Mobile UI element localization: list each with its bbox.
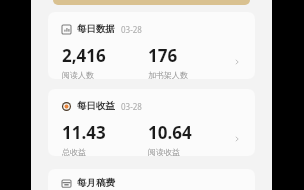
staticText: 10.64 [148,121,192,144]
button[interactable]: 每日收益 [48,89,255,156]
button[interactable]: 每月稿费 [48,169,255,190]
staticText: 03-28 [121,101,142,112]
staticText: 阅读收益 [148,147,180,156]
staticText: 每日收益 [77,100,115,112]
staticText: 每月稿费 [77,177,115,189]
staticText: 阅读人数 [62,70,94,79]
staticText: 加书架人数 [148,70,188,79]
staticText: 03-28 [121,24,142,35]
button[interactable]: 查看详情 [229,131,245,147]
staticText: 总收益 [62,147,86,156]
staticText: 176 [148,44,178,67]
staticText: 2,416 [62,44,106,67]
button[interactable]: 每日数据 [48,12,255,79]
staticText: 11.43 [62,121,106,144]
staticText: 每日数据 [77,23,115,35]
button[interactable]: 查看详情 [229,54,245,70]
button[interactable] [53,0,250,5]
